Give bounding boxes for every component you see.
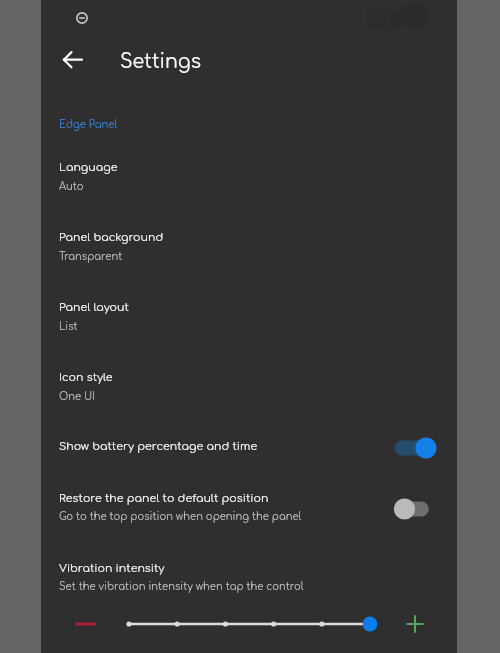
button[interactable]: Icon style [41, 371, 457, 431]
staticText: Vibration intensity [59, 562, 165, 574]
button[interactable]: Switch off [393, 497, 437, 521]
other: Do not disturb [76, 12, 88, 24]
button[interactable]: Show battery percentage and time [41, 425, 457, 471]
staticText: Panel layout [59, 301, 129, 313]
button[interactable]: Switch on [393, 436, 437, 460]
staticText: Language [59, 161, 118, 173]
staticText: Go to the top position when opening the … [59, 511, 302, 522]
button[interactable]: Language [41, 161, 457, 221]
button[interactable]: Panel background [41, 231, 457, 291]
staticText: Show battery percentage and time [59, 440, 258, 452]
button[interactable]: Decrease vibration intensity [68, 610, 96, 638]
staticText: Edge Panel [59, 119, 118, 130]
staticText: Panel background [59, 231, 164, 243]
button[interactable]: Increase vibration intensity [401, 610, 429, 638]
button[interactable]: Restore the panel to default position [41, 486, 457, 532]
staticText: Settings [120, 51, 201, 72]
staticText: Icon style [59, 371, 113, 383]
button[interactable]: Navigate back [58, 45, 88, 75]
staticText: List [59, 321, 78, 332]
staticText: Restore the panel to default position [59, 492, 269, 504]
staticText: One UI [59, 391, 96, 402]
staticText: Transparent [59, 251, 123, 262]
staticText: Auto [59, 181, 84, 192]
button[interactable]: Panel layout [41, 301, 457, 361]
staticText: Set the vibration intensity when tap the… [59, 581, 304, 592]
